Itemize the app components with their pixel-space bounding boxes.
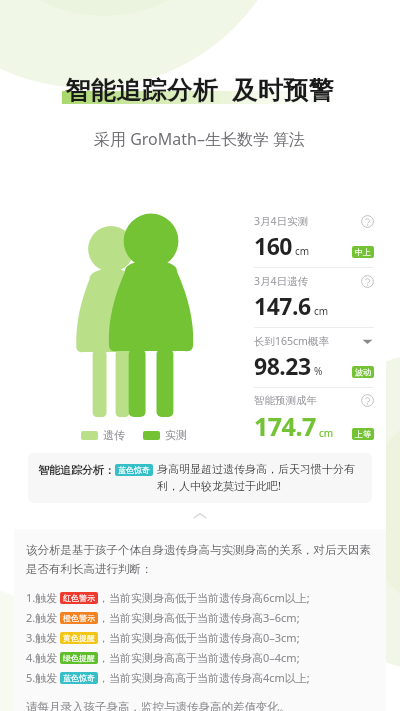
- button[interactable]: 5.触发: [26, 670, 374, 685]
- staticText: 上等: [355, 429, 371, 439]
- button[interactable]: 遗传: [81, 428, 125, 442]
- staticText: 蓝色惊奇: [63, 673, 95, 683]
- staticText: 5.触发: [26, 670, 58, 685]
- staticText: cm: [295, 244, 310, 258]
- button[interactable]: 实测: [143, 428, 187, 442]
- button[interactable]: 长到165cm概率: [254, 334, 374, 381]
- button[interactable]: 遗传: [14, 196, 386, 529]
- staticText: 遗传: [103, 428, 125, 442]
- staticText: ，当前实测身高低于当前遗传身高6cm以上;: [98, 590, 310, 605]
- staticText: 请每月录入孩子身高，监控与遗传身高的差值变化。: [26, 700, 291, 711]
- staticText: 98.23: [254, 350, 311, 381]
- staticText: 147.6: [254, 290, 311, 321]
- other: 说明: [361, 275, 374, 288]
- staticText: 智能追踪分析：: [38, 463, 115, 477]
- button[interactable]: 3月4日实测: [254, 214, 374, 261]
- button[interactable]: 4.触发: [26, 650, 374, 665]
- button[interactable]: 3.触发: [26, 630, 374, 645]
- staticText: %: [314, 364, 323, 378]
- staticText: 2.触发: [26, 610, 58, 625]
- staticText: ，当前实测身高低于当前遗传身高0–3cm;: [98, 630, 300, 645]
- staticText: 采用 GroMath–生长数学 算法: [94, 128, 306, 150]
- staticText: 绿色提醒: [63, 653, 95, 663]
- staticText: 3.触发: [26, 630, 58, 645]
- staticText: 智能追踪分析 及时预警: [65, 72, 335, 106]
- staticText: 实测: [165, 428, 187, 442]
- button[interactable]: 1.触发: [26, 590, 374, 605]
- staticText: 4.触发: [26, 650, 58, 665]
- other: 说明: [361, 394, 374, 407]
- staticText: 174.7: [254, 409, 316, 443]
- button[interactable]: 智能预测成年: [254, 394, 374, 443]
- staticText: 波动: [355, 367, 371, 377]
- staticText: 智能预测成年: [254, 394, 317, 407]
- other: 展开: [361, 335, 374, 348]
- staticText: ，当前实测身高低于当前遗传身高3–6cm;: [98, 610, 300, 625]
- button[interactable]: 2.触发: [26, 610, 374, 625]
- staticText: 红色警示: [63, 593, 95, 603]
- staticText: 橙色警示: [63, 613, 95, 623]
- staticText: 中上: [355, 247, 371, 257]
- staticText: 160: [254, 230, 292, 261]
- staticText: 黄色提醒: [63, 633, 95, 643]
- staticText: cm: [314, 304, 329, 318]
- staticText: 蓝色惊奇: [118, 465, 150, 475]
- staticText: 1.触发: [26, 590, 58, 605]
- staticText: 长到165cm概率: [254, 334, 329, 348]
- staticText: ，当前实测身高高于当前遗传身高0–4cm;: [98, 650, 300, 665]
- staticText: 身高明显超过遗传身高，后天习惯十分有利，人中较龙莫过于此吧!: [157, 462, 362, 494]
- button[interactable]: 3月4日遗传: [254, 274, 374, 321]
- staticText: 3月4日实测: [254, 214, 309, 228]
- staticText: cm: [319, 426, 334, 440]
- staticText: 3月4日遗传: [254, 274, 309, 288]
- staticText: 该分析是基于孩子个体自身遗传身高与实测身高的关系，对后天因素是否有利长高进行判断…: [26, 543, 374, 577]
- staticText: ，当前实测身高高于当前遗传身高4cm以上;: [98, 670, 310, 685]
- other: 说明: [361, 215, 374, 228]
- button[interactable]: 智能追踪分析：: [28, 453, 372, 503]
